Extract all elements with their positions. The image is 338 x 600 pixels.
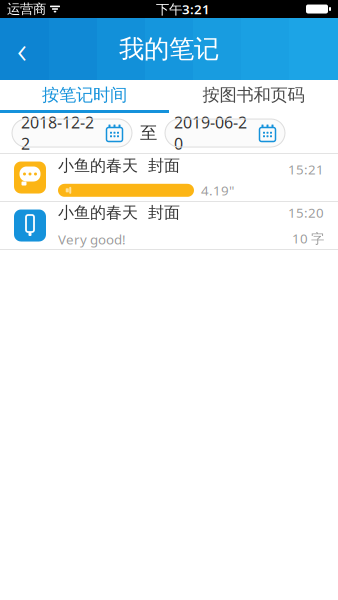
staticText: 我的笔记 <box>119 33 219 64</box>
staticText: 15:20 <box>288 204 324 221</box>
staticText: ‹ <box>17 24 27 74</box>
button[interactable]: 按图书和页码 <box>169 80 338 110</box>
staticText: 至 <box>140 122 157 144</box>
staticText: 按图书和页码 <box>202 84 304 106</box>
staticText: 15:21 <box>288 160 324 178</box>
staticText: 下午3:21 <box>156 0 210 18</box>
staticText: 运营商 <box>7 1 46 17</box>
staticText: 小鱼的春天 封面 <box>58 156 180 175</box>
staticText: 2019-06-20 <box>174 112 247 154</box>
button[interactable]: 按笔记时间 <box>0 80 169 110</box>
button[interactable]: 小鱼的春天 封面 <box>0 154 338 201</box>
button[interactable]: 2019-06-20 <box>165 119 285 147</box>
button[interactable]: Back <box>0 26 44 72</box>
staticText: 2018-12-22 <box>21 112 94 154</box>
button[interactable]: 小鱼的春天 封面 <box>0 202 338 249</box>
staticText: Very good! <box>58 230 126 248</box>
staticText: 10 字 <box>292 229 324 247</box>
staticText: 按笔记时间 <box>42 84 127 106</box>
staticText: 4.19" <box>201 181 234 199</box>
button[interactable]: 2018-12-22 <box>12 119 132 147</box>
staticText: 小鱼的春天 封面 <box>58 203 180 222</box>
